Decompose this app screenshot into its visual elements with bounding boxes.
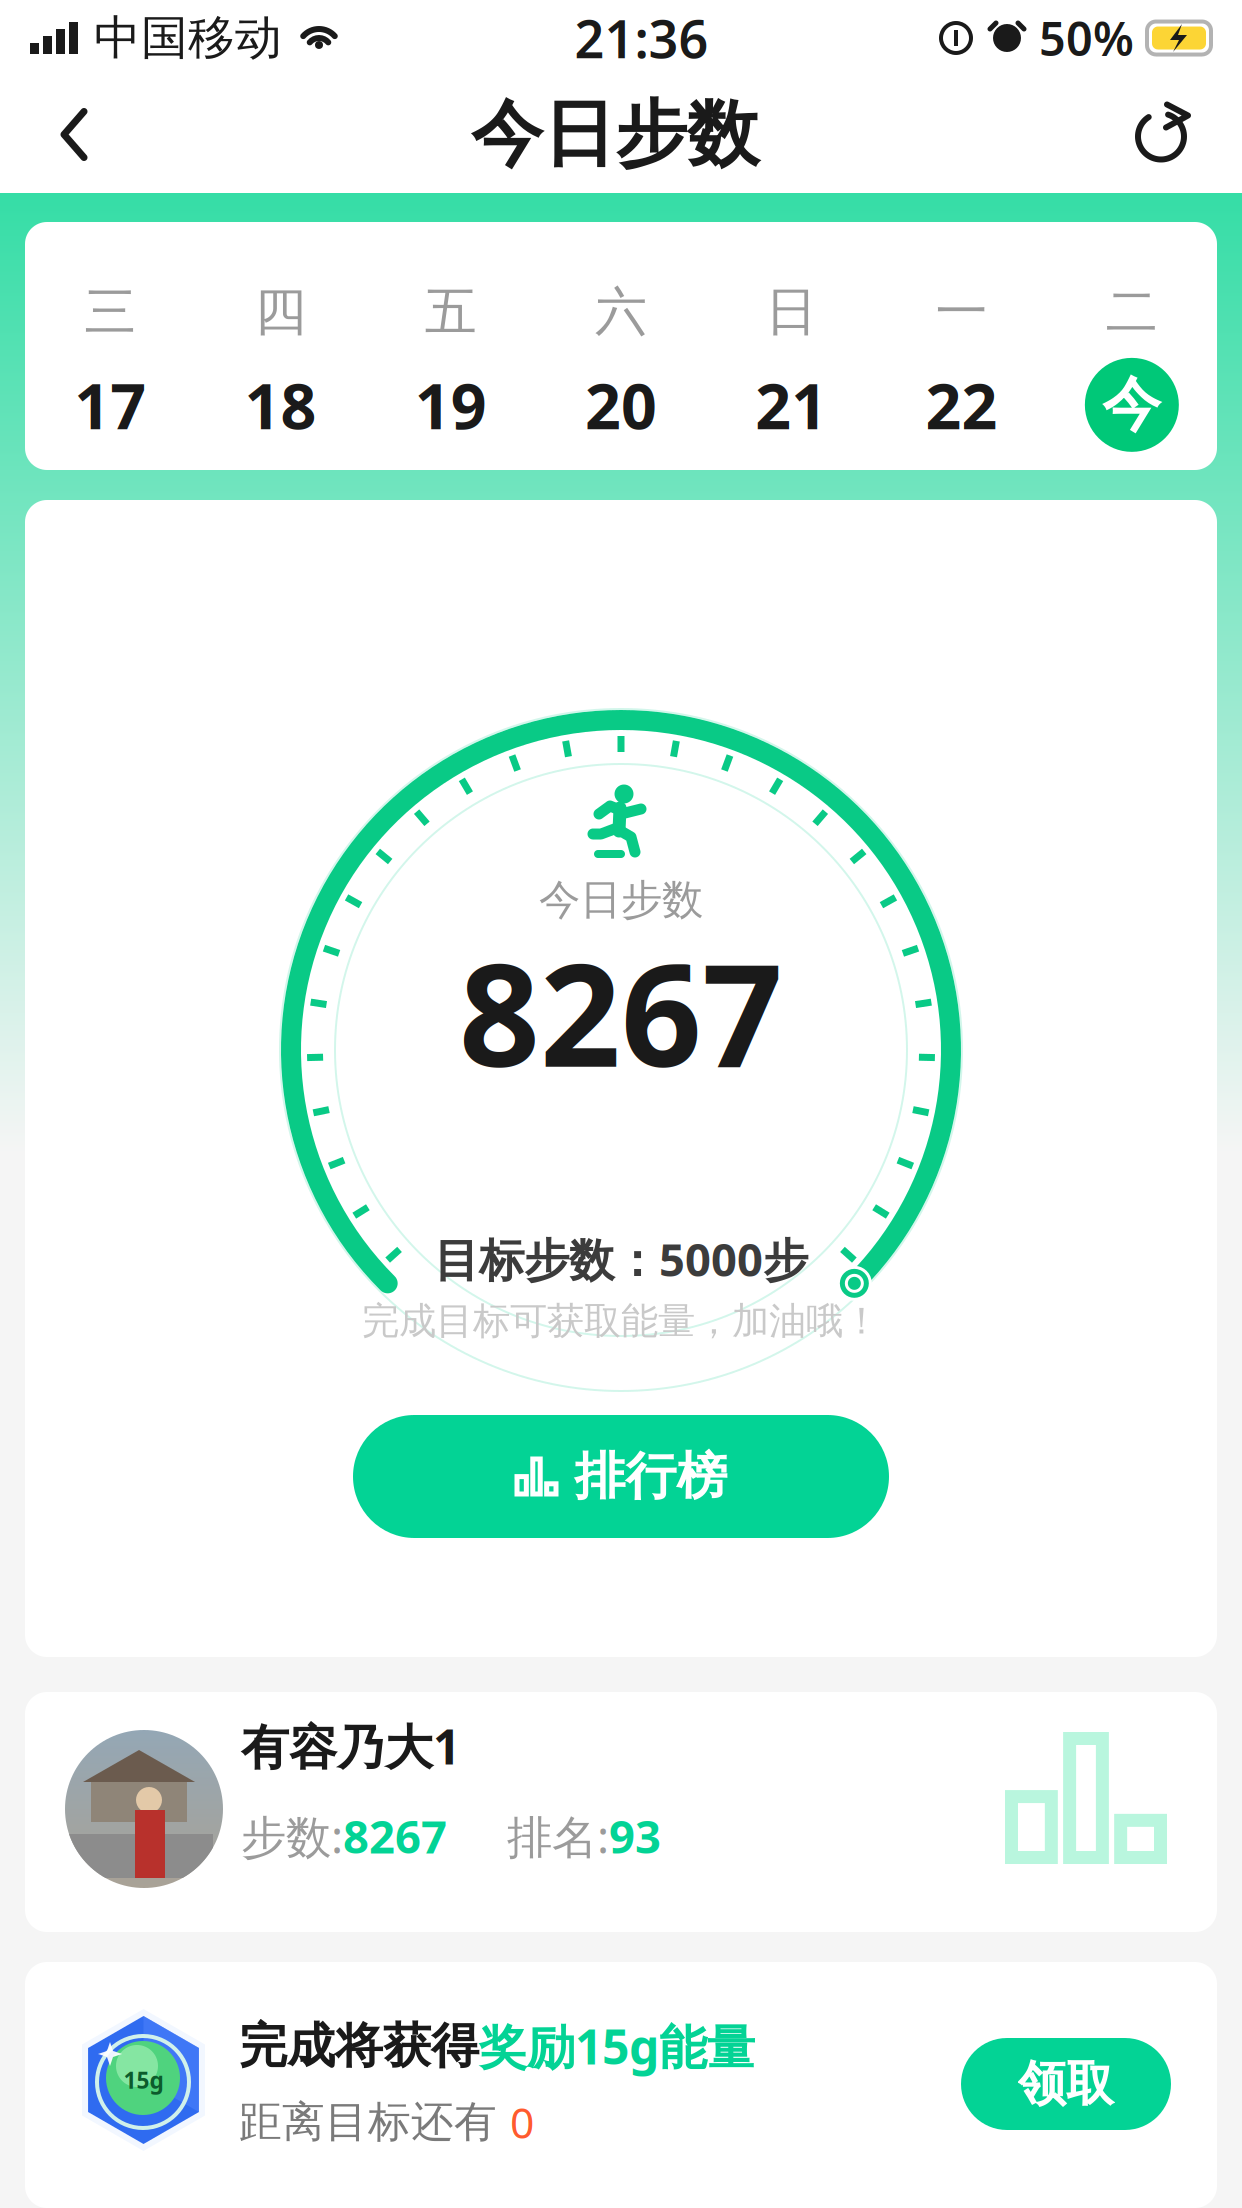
staticText: 今日步数 bbox=[471, 90, 759, 179]
staticText: 日 bbox=[765, 280, 817, 344]
staticText: 17 bbox=[74, 363, 146, 446]
button[interactable]: 领取 bbox=[961, 2038, 1171, 2130]
button[interactable]: 三 bbox=[25, 280, 195, 452]
staticText: 93 bbox=[609, 1806, 661, 1866]
button[interactable]: 五 bbox=[366, 280, 536, 452]
staticText: 一 bbox=[936, 280, 988, 344]
staticText: 排行榜 bbox=[574, 1445, 727, 1508]
staticText: 三 bbox=[84, 280, 136, 344]
staticText: 完成目标可获取能量，加油哦！ bbox=[362, 1298, 880, 1344]
staticText: 0 bbox=[510, 2094, 534, 2150]
staticText: 步数: bbox=[241, 1806, 343, 1866]
staticText: 15g bbox=[123, 2065, 163, 2095]
staticText: 六 bbox=[595, 280, 647, 344]
button[interactable]: 排行榜 bbox=[353, 1415, 889, 1538]
button[interactable]: Share bbox=[1094, 76, 1242, 192]
button[interactable]: 四 bbox=[195, 280, 366, 452]
staticText: 8267 bbox=[343, 1806, 447, 1866]
staticText: 奖励15g能量 bbox=[479, 2014, 755, 2078]
staticText: 四 bbox=[254, 280, 306, 344]
staticText: 排名: bbox=[507, 1806, 609, 1866]
staticText: 22 bbox=[926, 363, 998, 446]
staticText: 8267 bbox=[459, 918, 783, 1106]
staticText: 今日步数 bbox=[539, 875, 703, 925]
button[interactable]: 一 bbox=[876, 280, 1047, 452]
staticText: 今 bbox=[1102, 369, 1161, 441]
staticText: 完成将获得 bbox=[239, 2016, 479, 2075]
staticText: 19 bbox=[415, 363, 487, 446]
staticText: 中国移动 bbox=[94, 9, 282, 67]
staticText: 18 bbox=[244, 363, 316, 446]
staticText: 21:36 bbox=[574, 3, 708, 73]
staticText: 领取 bbox=[1018, 2054, 1114, 2113]
staticText: 目标步数：5000步 bbox=[434, 1229, 808, 1289]
staticText: 有容乃大1 bbox=[241, 1714, 460, 1778]
button[interactable]: Back bbox=[0, 77, 136, 191]
button[interactable]: 六 bbox=[536, 280, 706, 452]
button[interactable]: 有容乃大1 bbox=[25, 1692, 1217, 1932]
staticText: 五 bbox=[425, 280, 477, 344]
button[interactable]: 二 bbox=[1047, 280, 1217, 452]
staticText: 21 bbox=[755, 363, 827, 446]
button[interactable]: 日 bbox=[706, 280, 876, 452]
staticText: 二 bbox=[1106, 280, 1158, 344]
staticText: 20 bbox=[585, 363, 657, 446]
staticText: 距离目标还有 bbox=[239, 2096, 510, 2148]
staticText: 50% bbox=[1039, 7, 1134, 69]
